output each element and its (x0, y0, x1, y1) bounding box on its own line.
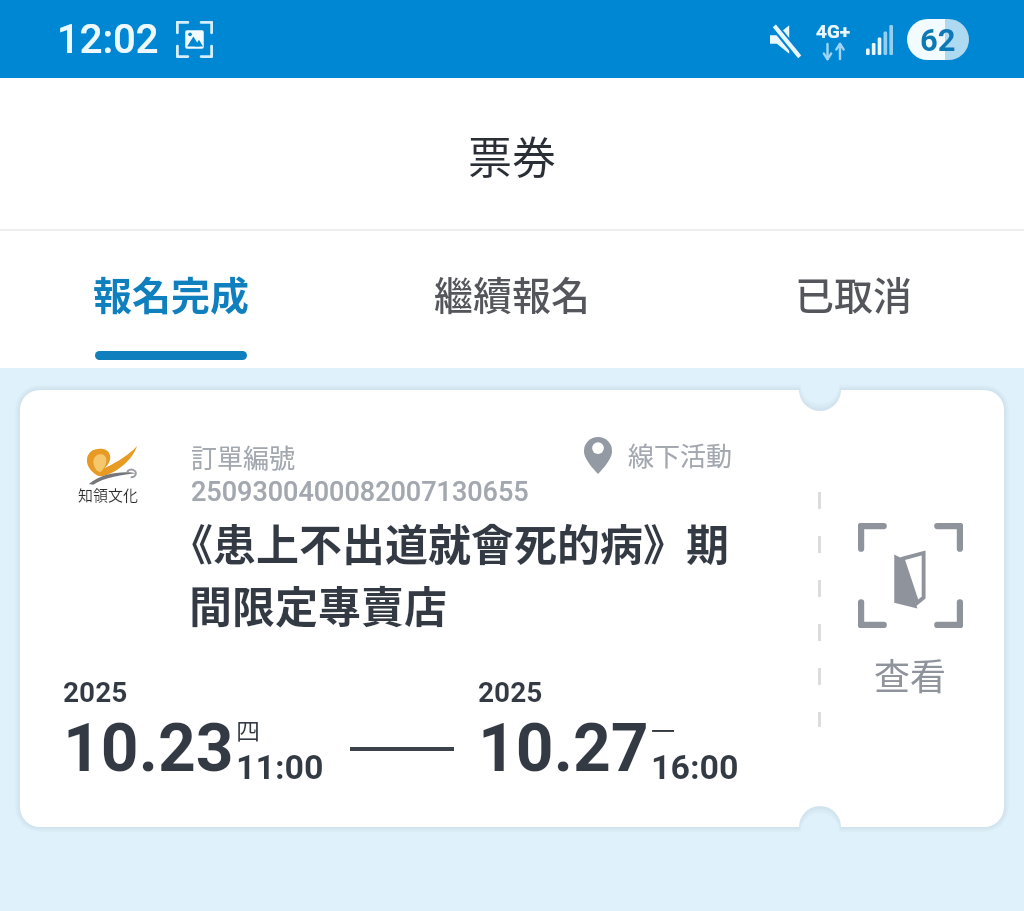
staticText: 票券 (468, 123, 556, 187)
staticText: 繼續報名 (434, 265, 591, 321)
staticText: 訂單編號 (191, 438, 296, 476)
button[interactable]: 知領文化 (20, 390, 1004, 827)
other: Screenshot (176, 21, 213, 58)
staticText: 間限定專賣店 (189, 573, 447, 635)
staticText: 2025 (478, 676, 543, 709)
staticText: 10.23 (63, 710, 234, 787)
staticText: 12:02 (57, 16, 159, 63)
other: Mute (770, 24, 801, 55)
staticText: 四 (236, 712, 260, 747)
staticText: 已取消 (795, 265, 913, 321)
staticText: 一 (651, 712, 675, 747)
staticText: 2025 (63, 676, 128, 709)
staticText: 2509300400082007130655 (191, 476, 529, 508)
staticText: 知領文化 (78, 484, 139, 506)
staticText: 11:00 (236, 747, 324, 787)
staticText: 《患上不出道就會死的病》期 (170, 511, 729, 573)
button[interactable]: 報名完成 (0, 231, 342, 368)
staticText: 線下活動 (628, 436, 733, 474)
staticText: 16:00 (651, 747, 739, 787)
staticText: 查看 (874, 648, 947, 700)
button[interactable]: 繼續報名 (342, 231, 683, 368)
staticText: 62 (920, 22, 956, 58)
other: Battery 62 percent (907, 19, 969, 60)
button[interactable]: 查看 View ticket (858, 523, 963, 700)
button[interactable]: 已取消 (683, 231, 1024, 368)
staticText: 報名完成 (93, 265, 250, 321)
staticText: 10.27 (478, 710, 649, 787)
staticText: 4G+ (816, 20, 851, 42)
other: Signal (866, 25, 893, 55)
